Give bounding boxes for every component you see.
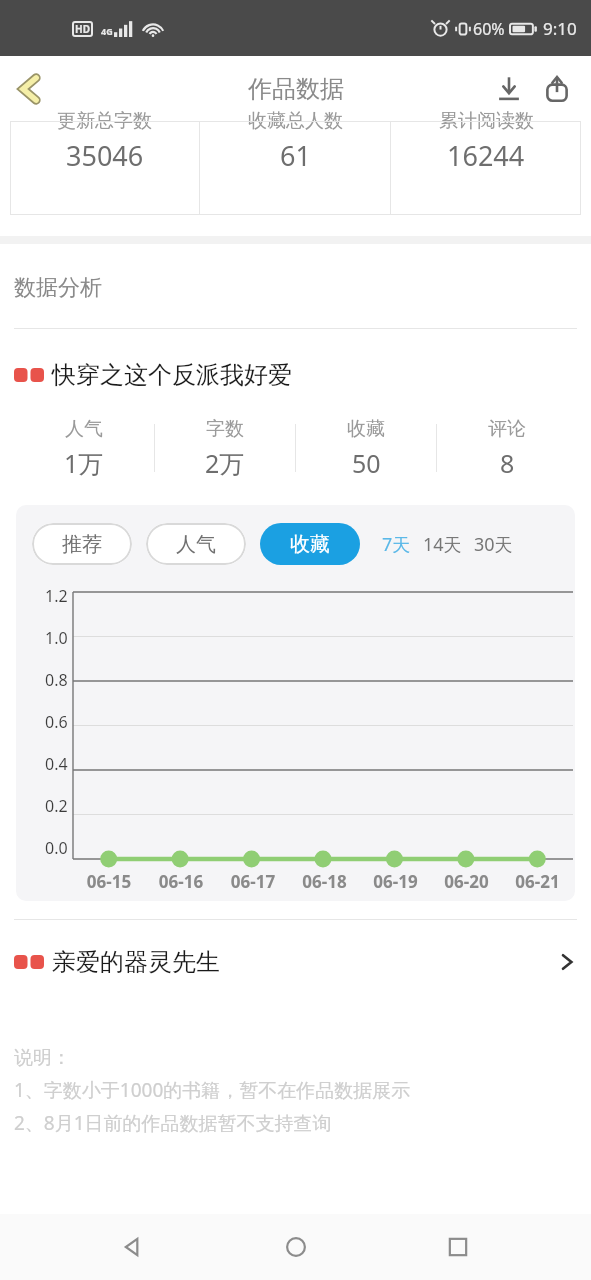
staticText: 人气 (176, 532, 216, 557)
staticText: 35046 (66, 137, 144, 174)
staticText: 更新总字数 (57, 109, 152, 133)
staticText: 06-16 (145, 870, 217, 893)
staticText: 50 (352, 446, 381, 480)
staticText: 数据分析 (14, 274, 102, 302)
button[interactable]: 收藏 (296, 409, 436, 487)
button[interactable]: 字数 (155, 409, 295, 487)
staticText: 收藏 (347, 417, 385, 441)
button[interactable]: Share (533, 65, 581, 113)
button[interactable]: 评论 (437, 409, 577, 487)
staticText: 8 (500, 446, 515, 480)
button[interactable]: 7天 (382, 532, 411, 557)
staticText: 2、8月1日前的作品数据暂不支持查询 (14, 1110, 332, 1136)
button[interactable]: Back (4, 63, 56, 115)
staticText: 评论 (488, 417, 526, 441)
button[interactable]: 收藏总人数 (200, 121, 390, 215)
staticText: 06-17 (217, 870, 289, 893)
button[interactable]: 人气 (14, 409, 154, 487)
staticText: 快穿之这个反派我好爱 (52, 360, 292, 390)
button[interactable]: 推荐 (32, 523, 132, 565)
staticText: 累计阅读数 (439, 109, 534, 133)
staticText: 1.2 (45, 585, 68, 607)
button[interactable]: 亲爱的器灵先生 (14, 942, 577, 982)
button[interactable]: 14天 (423, 532, 462, 557)
staticText: 61 (280, 137, 311, 174)
button[interactable]: Home (266, 1217, 326, 1277)
staticText: 60% (473, 18, 505, 40)
staticText: 推荐 (62, 532, 102, 557)
staticText: 16244 (447, 137, 525, 174)
staticText: 收藏总人数 (248, 109, 343, 133)
staticText: 1.0 (45, 627, 68, 649)
button[interactable]: 人气 (146, 523, 246, 565)
staticText: 字数 (206, 417, 244, 441)
button[interactable]: 更新总字数 (10, 121, 199, 215)
staticText: 1、字数小于1000的书籍，暂不在作品数据展示 (14, 1077, 411, 1103)
staticText: 亲爱的器灵先生 (52, 947, 220, 977)
staticText: 1万 (64, 446, 104, 480)
staticText: HD (75, 22, 90, 36)
staticText: 0.4 (45, 753, 68, 775)
staticText: 06-15 (73, 870, 145, 893)
button[interactable]: 30天 (474, 532, 513, 557)
button[interactable]: Download (485, 65, 533, 113)
staticText: 作品数据 (248, 74, 344, 104)
staticText: 2万 (205, 446, 245, 480)
staticText: 收藏 (290, 532, 330, 557)
staticText: 06-20 (431, 870, 502, 893)
staticText: 0.0 (45, 837, 68, 859)
button[interactable]: 收藏 (260, 523, 360, 565)
button[interactable]: 累计阅读数 (391, 121, 581, 215)
staticText: 说明： (14, 1046, 71, 1070)
button[interactable]: Recents (428, 1217, 488, 1277)
staticText: 4G (101, 25, 113, 37)
staticText: 06-19 (360, 870, 431, 893)
staticText: 06-18 (289, 870, 360, 893)
button[interactable]: Back (103, 1217, 163, 1277)
staticText: 0.8 (45, 669, 68, 691)
staticText: 0.6 (45, 711, 68, 733)
staticText: 0.2 (45, 795, 68, 817)
staticText: 06-21 (502, 870, 573, 893)
button[interactable]: 快穿之这个反派我好爱 (14, 355, 577, 395)
staticText: 9:10 (543, 17, 577, 40)
staticText: 人气 (65, 417, 103, 441)
